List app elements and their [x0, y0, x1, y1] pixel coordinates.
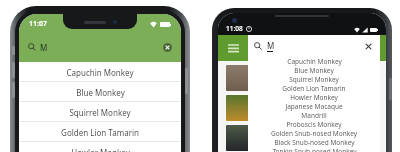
- staticText: Golden Snub-nosed Monkey: [271, 129, 357, 138]
- staticText: Squirrel Monkey: [69, 107, 131, 118]
- staticText: Howler Monkey: [71, 147, 130, 152]
- button[interactable]: Capuchin Monkey: [248, 57, 380, 66]
- button[interactable]: Squirrel Monkey: [19, 102, 181, 122]
- staticText: Howler Monkey: [290, 93, 338, 102]
- button[interactable]: Tonkin Snub-nosed Monkey: [248, 147, 380, 152]
- button[interactable]: [226, 95, 252, 121]
- staticText: Capuchin Monkey: [287, 57, 342, 66]
- staticText: Blue Monkey: [76, 87, 125, 98]
- button[interactable]: Japanese Macaque: [248, 102, 380, 111]
- staticText: Capuchin Monkey: [66, 67, 134, 78]
- button[interactable]: Howler Monkey: [248, 93, 380, 102]
- button[interactable]: Proboscis Monkey: [248, 120, 380, 129]
- button[interactable]: Blue Monkey: [248, 66, 380, 75]
- staticText: M: [40, 42, 48, 53]
- staticText: Tonkin Snub-nosed Monkey: [272, 147, 357, 152]
- button[interactable]: Clear search: [163, 43, 172, 52]
- button[interactable]: Squirrel Monkey: [248, 75, 380, 84]
- button[interactable]: Golden Lion Tamarin: [248, 84, 380, 93]
- staticText: Golden Lion Tamarin: [282, 84, 346, 93]
- staticText: Japanese Macaque: [285, 102, 343, 111]
- staticText: M: [267, 40, 275, 51]
- staticText: Black Snub-nosed Monkey: [274, 138, 355, 147]
- button[interactable]: Blue Monkey: [19, 82, 181, 102]
- button[interactable]: Black Snub-nosed Monkey: [248, 138, 380, 147]
- button[interactable]: Howler Monkey: [19, 142, 181, 152]
- staticText: Proboscis Monkey: [286, 120, 342, 129]
- button[interactable]: [226, 125, 252, 151]
- button[interactable]: Golden Snub-nosed Monkey: [248, 129, 380, 138]
- staticText: Blue Monkey: [294, 66, 334, 75]
- button[interactable]: Capuchin Monkey: [19, 62, 181, 82]
- button[interactable]: Mandrill: [248, 111, 380, 120]
- button[interactable]: M: [248, 35, 380, 57]
- staticText: 11:08: [226, 24, 243, 33]
- button[interactable]: Golden Lion Tamarin: [19, 122, 181, 142]
- button[interactable]: M: [19, 34, 181, 60]
- staticText: 11:07: [29, 19, 47, 29]
- staticText: Mandrill: [301, 111, 327, 120]
- staticText: Squirrel Monkey: [289, 75, 339, 84]
- button[interactable]: Open navigation menu: [224, 39, 242, 57]
- staticText: Golden Lion Tamarin: [61, 127, 139, 138]
- button[interactable]: [226, 65, 252, 91]
- button[interactable]: Close search: [362, 40, 374, 52]
